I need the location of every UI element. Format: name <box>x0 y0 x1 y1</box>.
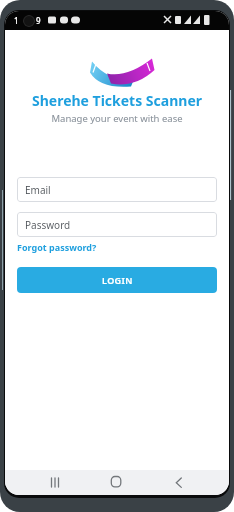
button[interactable]: Email <box>17 177 217 202</box>
staticText: 1 <box>14 15 19 26</box>
staticText: LOGIN <box>102 274 133 286</box>
staticText: Sherehe Tickets Scanner <box>5 91 229 110</box>
staticText: Forgot password? <box>17 241 97 253</box>
staticText: Email <box>25 183 51 197</box>
button[interactable] <box>168 470 190 495</box>
staticText: Manage your event with ease <box>5 112 229 125</box>
button[interactable]: LOGIN <box>17 267 217 293</box>
staticText: Password <box>25 218 71 232</box>
staticText: 9 <box>36 15 41 26</box>
button[interactable]: Password <box>17 212 217 237</box>
button[interactable]: Forgot password? <box>17 241 97 253</box>
button[interactable] <box>45 470 67 495</box>
button[interactable] <box>105 470 127 495</box>
